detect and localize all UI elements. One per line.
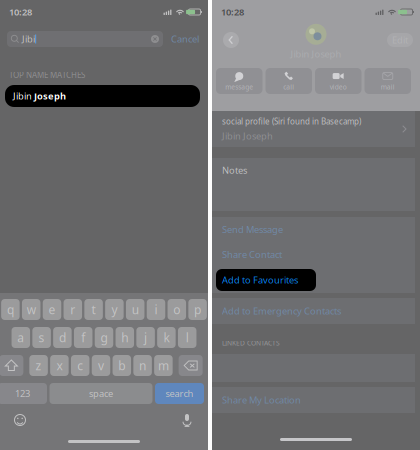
- staticText: Edit: [392, 34, 408, 46]
- staticText: v: [98, 357, 104, 373]
- staticText: t: [92, 301, 96, 317]
- staticText: i: [154, 301, 157, 317]
- staticText: video: [330, 83, 347, 91]
- staticText: w: [27, 301, 36, 317]
- staticText: x: [56, 357, 62, 373]
- staticText: h: [121, 329, 128, 345]
- button[interactable]: Delete: [179, 355, 203, 376]
- button[interactable]: 123: [0, 383, 47, 404]
- button[interactable]: Edit: [387, 33, 413, 47]
- staticText: k: [163, 329, 169, 345]
- button[interactable]: call: [265, 68, 312, 94]
- button[interactable]: message: [216, 68, 262, 94]
- staticText: Jibin Joseph: [222, 130, 273, 142]
- button[interactable]: d: [53, 327, 72, 348]
- button[interactable]: Add to Favourites: [212, 267, 415, 293]
- staticText: Add to Emergency Contacts: [222, 305, 341, 317]
- staticText: 123: [15, 387, 30, 400]
- staticText: search: [165, 387, 193, 400]
- staticText: r: [70, 301, 75, 317]
- staticText: c: [77, 357, 83, 373]
- staticText: g: [100, 329, 107, 345]
- button[interactable]: x: [50, 355, 69, 376]
- button[interactable]: s: [32, 327, 51, 348]
- button[interactable]: l: [178, 327, 196, 348]
- staticText: Add to Favourites: [222, 274, 298, 286]
- button[interactable]: g: [95, 327, 113, 348]
- staticText: Notes: [222, 164, 247, 176]
- staticText: y: [111, 301, 117, 317]
- staticText: j: [144, 329, 147, 345]
- button[interactable]: Shift: [0, 355, 23, 376]
- button[interactable]: u: [126, 299, 144, 320]
- button[interactable]: i: [147, 299, 165, 320]
- staticText: Send Message: [222, 223, 283, 236]
- button[interactable]: Emoji keyboard: [12, 412, 28, 428]
- staticText: message: [225, 83, 253, 91]
- staticText: d: [59, 329, 66, 345]
- staticText: LINKED CONTACTS: [222, 339, 280, 347]
- button[interactable]: Cancel: [169, 31, 201, 47]
- button[interactable]: Send Message: [212, 217, 415, 242]
- button[interactable]: mail: [364, 68, 411, 94]
- button[interactable]: Clear search text: [148, 31, 162, 47]
- button[interactable]: n: [133, 355, 152, 376]
- staticText: s: [39, 329, 45, 345]
- staticText: Jibi: [22, 33, 35, 45]
- button[interactable]: search: [155, 383, 204, 404]
- button[interactable]: p: [188, 299, 207, 320]
- staticText: n: [139, 357, 146, 373]
- button[interactable]: Add to Emergency Contacts: [212, 298, 415, 323]
- button[interactable]: f: [74, 327, 92, 348]
- staticText: call: [283, 83, 294, 91]
- button[interactable]: Share My Location: [212, 387, 415, 412]
- staticText: p: [194, 301, 201, 317]
- button[interactable]: v: [92, 355, 110, 376]
- staticText: Share My Location: [222, 394, 301, 406]
- button[interactable]: q: [1, 299, 20, 320]
- button[interactable]: k: [157, 327, 176, 348]
- staticText: 10:28: [9, 6, 32, 18]
- button[interactable]: z: [29, 355, 48, 376]
- button[interactable]: Dictation: [180, 412, 194, 428]
- staticText: m: [158, 357, 169, 373]
- button[interactable]: j: [136, 327, 155, 348]
- button[interactable]: r: [64, 299, 82, 320]
- staticText: TOP NAME MATCHES: [9, 70, 85, 80]
- button[interactable]: Jibin: [5, 85, 200, 107]
- staticText: 10:28: [221, 6, 244, 18]
- button[interactable]: Share Contact: [212, 242, 415, 267]
- button[interactable]: t: [84, 299, 103, 320]
- button[interactable]: w: [22, 299, 40, 320]
- staticText: Joseph: [34, 90, 66, 102]
- button[interactable]: y: [105, 299, 124, 320]
- button[interactable]: o: [168, 299, 186, 320]
- button[interactable]: h: [115, 327, 134, 348]
- button[interactable]: b: [112, 355, 131, 376]
- staticText: o: [173, 301, 180, 317]
- staticText: f: [81, 329, 85, 345]
- button[interactable]: space: [49, 383, 152, 404]
- button[interactable]: m: [154, 355, 173, 376]
- staticText: Cancel: [171, 33, 199, 45]
- button[interactable]: video: [315, 68, 361, 94]
- staticText: a: [17, 329, 24, 345]
- staticText: social profile (Siri found in Basecamp): [222, 116, 361, 127]
- staticText: Jibin Joseph: [290, 48, 341, 60]
- staticText: l: [186, 329, 189, 345]
- staticText: mail: [381, 83, 395, 91]
- staticText: e: [48, 301, 55, 317]
- staticText: z: [36, 357, 42, 373]
- button[interactable]: a: [11, 327, 30, 348]
- staticText: space: [89, 387, 113, 400]
- staticText: Jibin: [13, 90, 34, 102]
- staticText: b: [118, 357, 125, 373]
- button[interactable]: e: [43, 299, 61, 320]
- staticText: u: [132, 301, 139, 317]
- staticText: Share Contact: [222, 248, 282, 261]
- button[interactable]: Back: [221, 30, 241, 50]
- button[interactable]: c: [71, 355, 89, 376]
- staticText: q: [7, 301, 14, 317]
